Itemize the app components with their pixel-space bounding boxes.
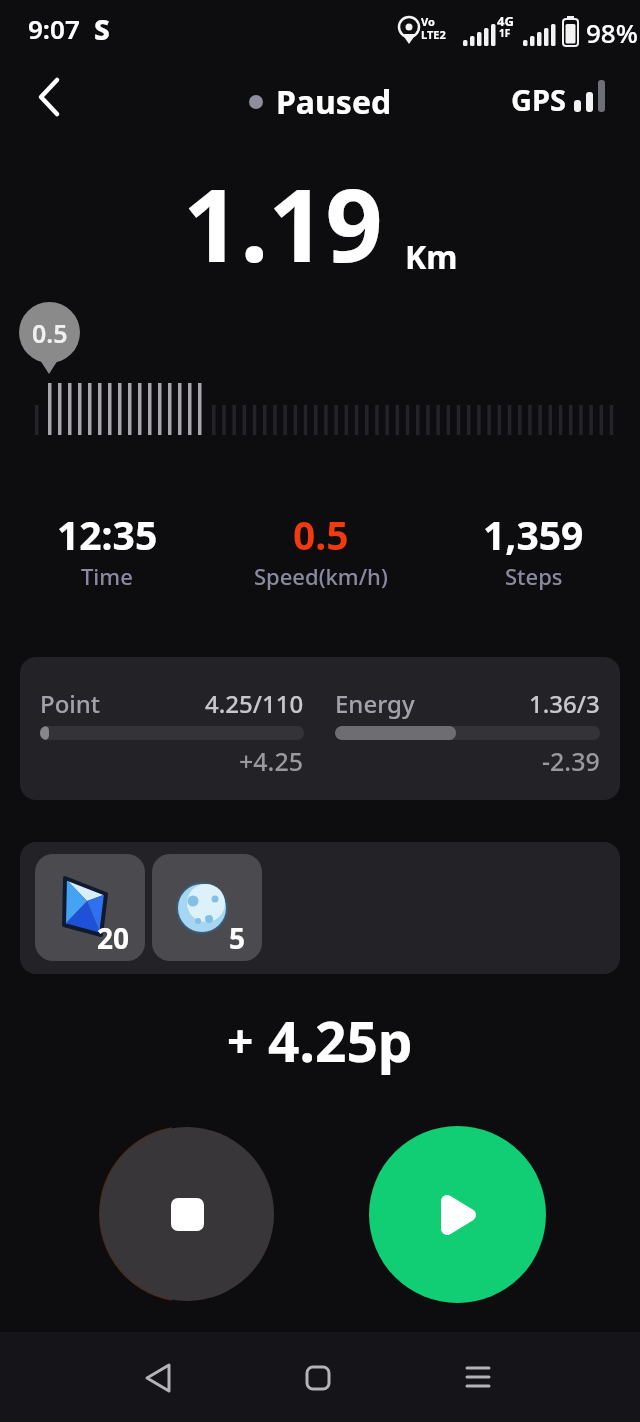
staticText: 5 — [229, 919, 246, 957]
staticText: Paused — [276, 80, 392, 124]
staticText: Steps — [505, 561, 563, 591]
staticText: 9:07 — [28, 11, 80, 46]
staticText: 0.5 — [32, 316, 68, 350]
staticText: 20 — [97, 919, 130, 957]
staticText: Speed(km/h) — [254, 561, 388, 591]
staticText: 1.19 — [183, 155, 383, 291]
staticText: Point — [40, 687, 101, 720]
staticText: Km — [405, 235, 458, 279]
staticText: GPS — [511, 80, 566, 119]
staticText: Time — [81, 561, 133, 591]
staticText: Energy — [335, 687, 415, 720]
staticText: Vo — [421, 14, 435, 29]
staticText: S — [94, 10, 110, 48]
staticText: +4.25 — [239, 744, 304, 778]
staticText: 1,359 — [483, 508, 584, 561]
staticText: LTE2 — [421, 27, 446, 42]
staticText: 12:35 — [57, 508, 158, 561]
staticText: 1F — [499, 26, 511, 40]
staticText: + — [227, 1009, 254, 1072]
staticText: 0.5 — [293, 508, 349, 561]
staticText: 4.25/110 — [205, 687, 304, 720]
staticText: -2.39 — [542, 744, 600, 778]
staticText: 1.36/3 — [529, 687, 600, 720]
staticText: 4.25p — [268, 1003, 413, 1078]
staticText: 98% — [586, 15, 638, 50]
staticText: 4G — [497, 12, 514, 30]
